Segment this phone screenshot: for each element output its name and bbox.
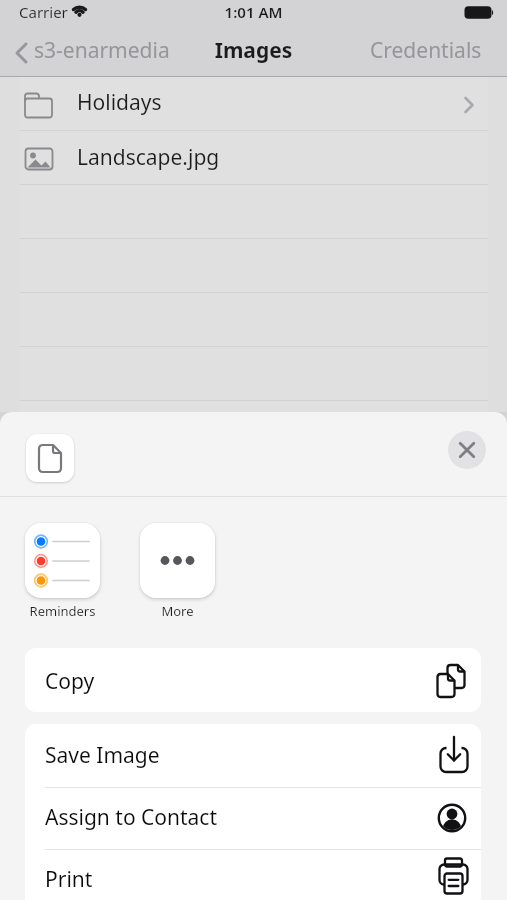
staticText: 1:01 AM	[0, 2, 507, 22]
staticText: More	[127, 602, 228, 620]
staticText: Reminders	[12, 602, 113, 620]
staticText: Holidays	[77, 88, 162, 117]
staticText: Credentials	[370, 36, 482, 65]
staticText: Landscape.jpg	[77, 143, 220, 172]
staticText: Assign to Contact	[45, 803, 218, 832]
staticText: Images	[0, 36, 507, 65]
staticText: s3-enarmedia	[34, 36, 170, 65]
staticText: Save Image	[45, 741, 160, 770]
staticText: Copy	[45, 667, 95, 696]
staticText: Carrier	[19, 2, 68, 22]
staticText: Print	[45, 865, 93, 894]
